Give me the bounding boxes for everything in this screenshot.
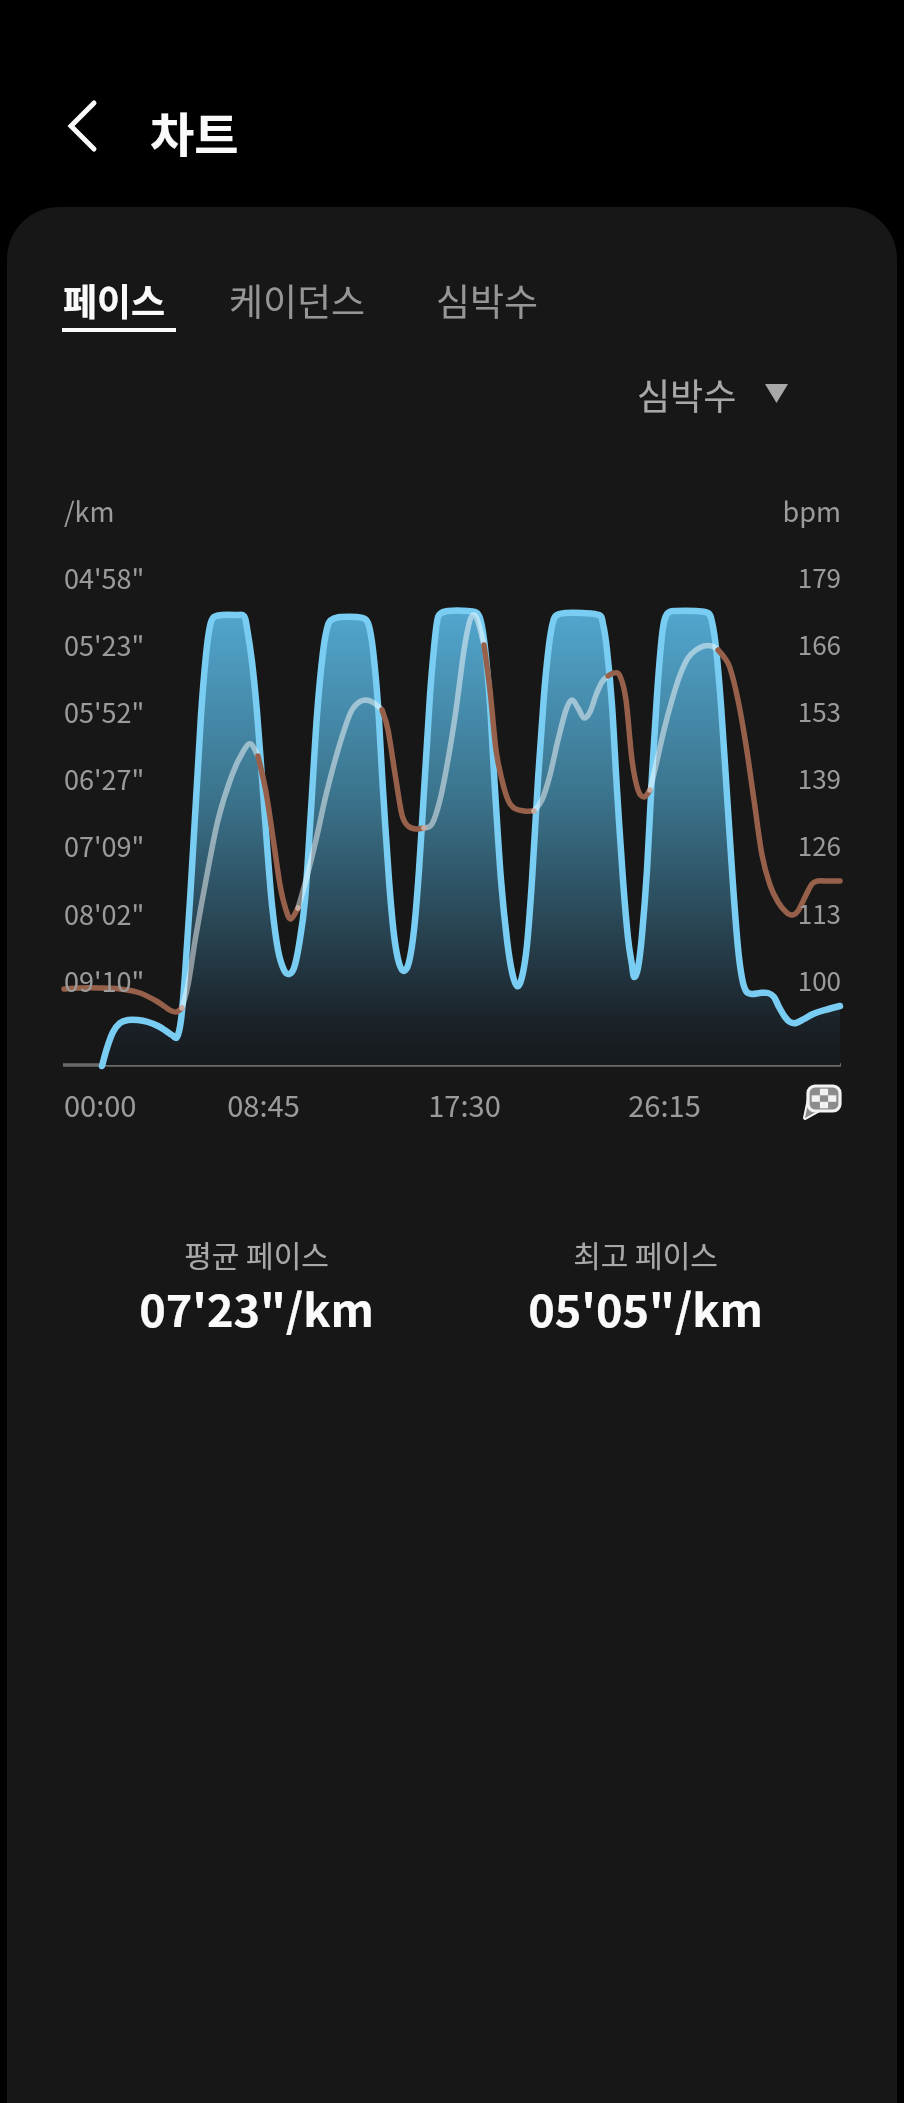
button[interactable] (50, 270, 190, 340)
staticText: bpm (782, 491, 841, 530)
staticText: 113 (797, 894, 841, 932)
staticText: 06'27" (64, 759, 145, 798)
button[interactable] (220, 270, 380, 340)
button[interactable] (620, 363, 800, 427)
staticText: 04'58" (64, 558, 145, 597)
staticText: 179 (797, 558, 841, 596)
staticText: 05'05"/km (528, 1275, 763, 1335)
staticText: 166 (797, 625, 841, 663)
staticText: 139 (797, 759, 841, 797)
staticText: /km (64, 491, 115, 530)
staticText: 126 (797, 826, 841, 864)
staticText: 평균 페이스 (184, 1232, 329, 1275)
staticText: 심박수 (637, 368, 737, 420)
staticText: 케이던스 (229, 273, 366, 327)
staticText: 07'09" (64, 826, 145, 865)
staticText: 05'52" (64, 692, 145, 731)
staticText: 17:30 (428, 1083, 501, 1125)
staticText: 26:15 (628, 1083, 701, 1125)
staticText: 08:45 (227, 1083, 300, 1125)
staticText: 05'23" (64, 625, 145, 664)
staticText: 08'02" (64, 894, 145, 933)
staticText: 페이스 (63, 273, 166, 327)
staticText: 07'23"/km (139, 1275, 374, 1335)
button[interactable] (50, 96, 120, 156)
staticText: 심박수 (436, 273, 539, 327)
staticText: 100 (797, 961, 841, 999)
staticText: 153 (797, 692, 841, 730)
button[interactable] (425, 270, 555, 340)
staticText: 최고 페이스 (573, 1232, 718, 1275)
staticText: 00:00 (64, 1083, 137, 1125)
staticText: 차트 (150, 97, 239, 157)
staticText: 09'10" (64, 961, 145, 1000)
